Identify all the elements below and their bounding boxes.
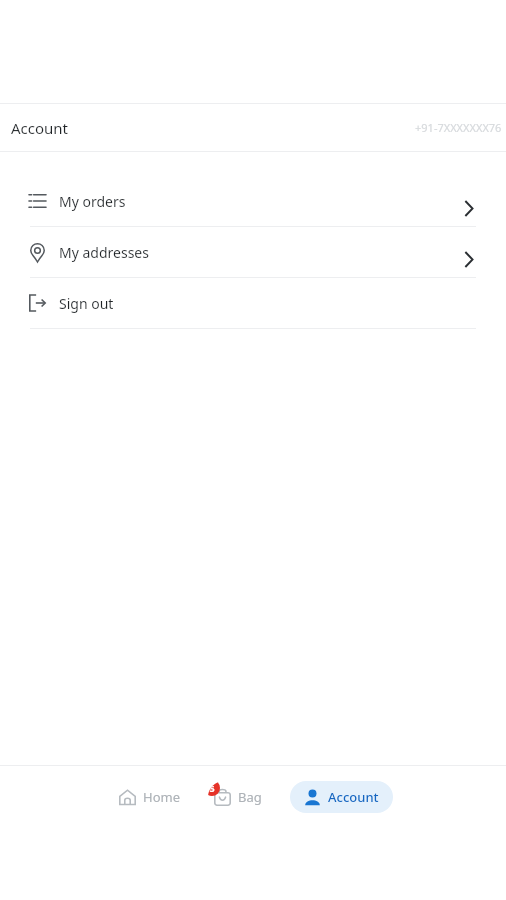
staticText: My addresses <box>59 243 149 262</box>
staticText: Account <box>328 788 379 806</box>
button[interactable]: My addresses <box>0 227 506 277</box>
staticText: Bag <box>238 788 262 806</box>
button[interactable]: Home <box>113 781 186 813</box>
button[interactable]: Account <box>290 781 393 813</box>
staticText: 5 <box>209 782 215 794</box>
button[interactable]: Sign out <box>0 278 506 328</box>
staticText: +91-7XXXXXXX76 <box>415 120 502 135</box>
staticText: My orders <box>59 192 126 211</box>
staticText: Home <box>143 788 180 806</box>
staticText: Sign out <box>59 294 114 313</box>
button[interactable]: My orders <box>0 176 506 226</box>
button[interactable]: 5 <box>208 781 268 813</box>
staticText: Account <box>11 118 69 138</box>
